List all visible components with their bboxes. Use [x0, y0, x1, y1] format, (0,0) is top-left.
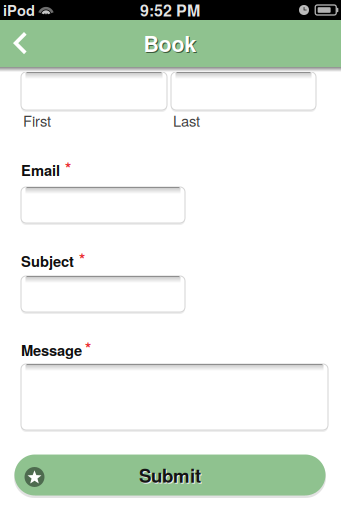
staticText: 9:52 PM — [140, 0, 200, 21]
staticText: Subject — [21, 250, 74, 271]
button[interactable]: Submit — [15, 454, 326, 497]
staticText: Book — [143, 28, 196, 58]
button[interactable]: Back — [0, 20, 46, 67]
staticText: Email — [21, 159, 60, 180]
staticText: Message — [21, 339, 82, 360]
staticText: * — [85, 336, 91, 359]
staticText: iPod — [3, 0, 35, 20]
staticText: Last — [173, 110, 200, 131]
staticText: Submit — [139, 462, 201, 488]
staticText: * — [79, 247, 85, 270]
staticText: Book — [144, 29, 197, 59]
staticText: * — [65, 156, 71, 179]
staticText: First — [23, 110, 51, 131]
staticText: Submit — [140, 463, 202, 489]
